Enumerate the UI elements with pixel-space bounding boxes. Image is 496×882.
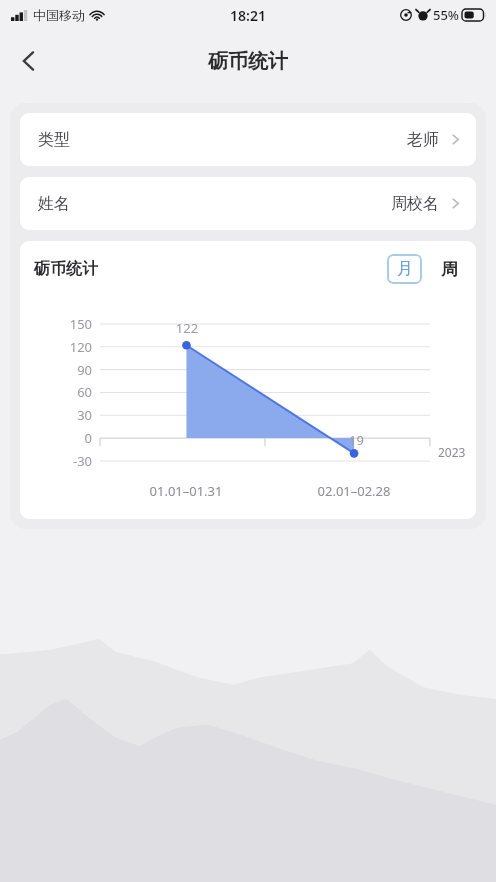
staticText: -30: [34, 452, 92, 470]
button[interactable]: Back: [6, 38, 52, 84]
staticText: 120: [34, 338, 92, 356]
staticText: 周校名: [391, 194, 439, 214]
staticText: 砺币统计: [208, 49, 288, 74]
staticText: 姓名: [38, 194, 70, 214]
staticText: 老师: [407, 130, 439, 150]
staticText: 30: [34, 406, 92, 424]
button[interactable]: 姓名: [20, 177, 476, 230]
staticText: 60: [34, 383, 92, 401]
staticText: 2023: [438, 444, 476, 460]
staticText: 90: [34, 361, 92, 379]
staticText: 55%: [433, 6, 459, 24]
staticText: 18:21: [230, 6, 266, 25]
staticText: 150: [34, 315, 92, 333]
staticText: 0: [34, 429, 92, 447]
staticText: 类型: [38, 130, 70, 150]
staticText: 02.01–02.28: [288, 482, 420, 500]
button[interactable]: 月: [387, 254, 422, 284]
button[interactable]: 周: [434, 254, 464, 284]
staticText: 周: [441, 259, 458, 280]
staticText: 砺币统计: [34, 259, 98, 279]
staticText: 01.01–01.31: [120, 482, 252, 500]
staticText: 19: [349, 431, 404, 449]
button[interactable]: 类型: [20, 113, 476, 166]
staticText: 月: [397, 259, 413, 279]
staticText: 中国移动: [33, 7, 85, 23]
staticText: 122: [154, 319, 220, 337]
